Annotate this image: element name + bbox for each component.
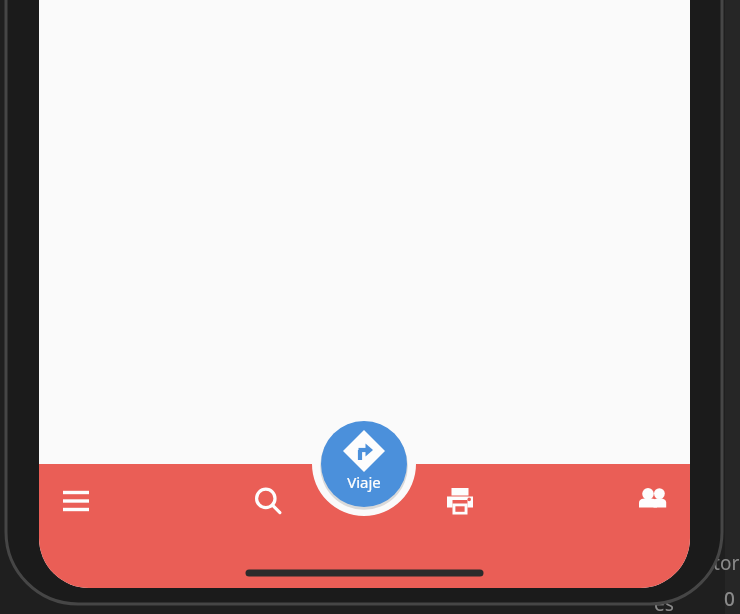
staticText: 0 [724, 586, 735, 612]
button[interactable]: Search [244, 477, 292, 525]
button[interactable]: Contacts [629, 477, 677, 525]
staticText: ctor [704, 550, 740, 576]
button[interactable]: Print [436, 477, 484, 525]
button[interactable]: Viaje [321, 421, 407, 507]
button[interactable]: Menu [52, 477, 100, 525]
staticText: Viaje [324, 472, 404, 494]
staticText: es [654, 591, 674, 614]
